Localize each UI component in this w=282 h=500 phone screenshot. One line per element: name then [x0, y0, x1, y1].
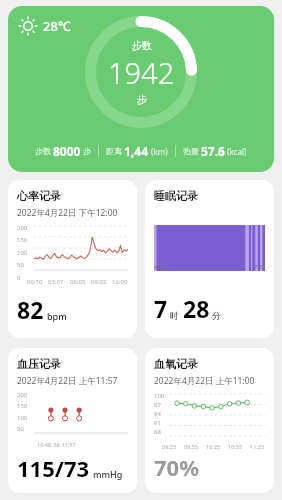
staticText: 70% — [154, 452, 200, 482]
staticText: 150 — [17, 402, 28, 410]
button[interactable]: 睡眠记录 — [145, 180, 274, 338]
staticText: 58 — [52, 441, 60, 448]
staticText: 28 — [183, 293, 210, 324]
staticText: 88 — [154, 428, 161, 436]
staticText: 100 — [17, 249, 28, 257]
staticText: 10:25 — [206, 443, 221, 450]
staticText: 步数 — [35, 146, 51, 156]
staticText: 91 — [154, 419, 161, 427]
staticText: mmHg — [93, 468, 123, 480]
staticText: 11:25 — [250, 443, 265, 450]
staticText: 2022年4月22日 上午11:00 — [154, 375, 255, 387]
staticText: 时 — [170, 310, 179, 321]
staticText: 步 — [83, 146, 91, 156]
staticText: 09:02 — [91, 278, 107, 286]
staticText: 94 — [154, 410, 161, 418]
staticText: 11:57 — [60, 441, 76, 448]
staticText: bpm — [47, 310, 67, 322]
staticText: 57.6 — [201, 143, 225, 159]
staticText: 0:09 — [154, 263, 165, 270]
staticText: 06:05 — [70, 278, 86, 286]
staticText: 7:29 — [254, 263, 265, 270]
staticText: 200 — [17, 391, 28, 399]
staticText: 50 — [17, 425, 24, 433]
staticText: 8000 — [53, 143, 81, 159]
staticText: (kcal) — [227, 146, 247, 157]
staticText: 82 — [17, 294, 44, 325]
staticText: 1,44 — [124, 143, 149, 159]
staticText: 12:00 — [112, 278, 128, 286]
staticText: 分 — [212, 310, 221, 321]
staticText: 心率记录 — [17, 189, 61, 203]
staticText: 100 — [154, 392, 165, 400]
button[interactable]: 血氧记录 — [145, 348, 274, 493]
staticText: 1942 — [108, 53, 175, 92]
staticText: 血压记录 — [17, 357, 61, 371]
staticText: 2022年4月22日 下午12:00 — [17, 207, 118, 219]
staticText: 10:48 — [37, 441, 52, 448]
staticText: 28℃ — [43, 17, 71, 35]
staticText: 200 — [17, 224, 28, 232]
button[interactable]: Weather sunny — [8, 6, 274, 172]
staticText: 09:25 — [162, 443, 177, 450]
staticText: 00:10 — [27, 278, 43, 286]
staticText: 09:55 — [184, 443, 199, 450]
staticText: 115/73 — [17, 453, 90, 483]
button[interactable]: 心率记录 — [8, 180, 137, 338]
other: Weather sunny — [18, 16, 38, 36]
staticText: 热量 — [183, 146, 199, 156]
staticText: 97 — [154, 401, 161, 409]
staticText: 步数 — [132, 39, 152, 52]
staticText: 0 — [17, 274, 21, 282]
staticText: 100 — [17, 414, 28, 422]
staticText: 2022年4月22日 上午11:57 — [17, 375, 118, 387]
staticText: 步 — [137, 93, 147, 106]
staticText: 距离 — [106, 146, 122, 156]
staticText: 150 — [17, 236, 28, 244]
staticText: 血氧记录 — [154, 357, 198, 371]
staticText: (km) — [151, 146, 168, 157]
staticText: 10:55 — [228, 443, 243, 450]
button[interactable]: 血压记录 — [8, 348, 137, 493]
staticText: 7 — [154, 293, 168, 324]
staticText: 03:07 — [48, 278, 64, 286]
staticText: 睡眠记录 — [154, 189, 198, 203]
staticText: 50 — [17, 261, 24, 269]
